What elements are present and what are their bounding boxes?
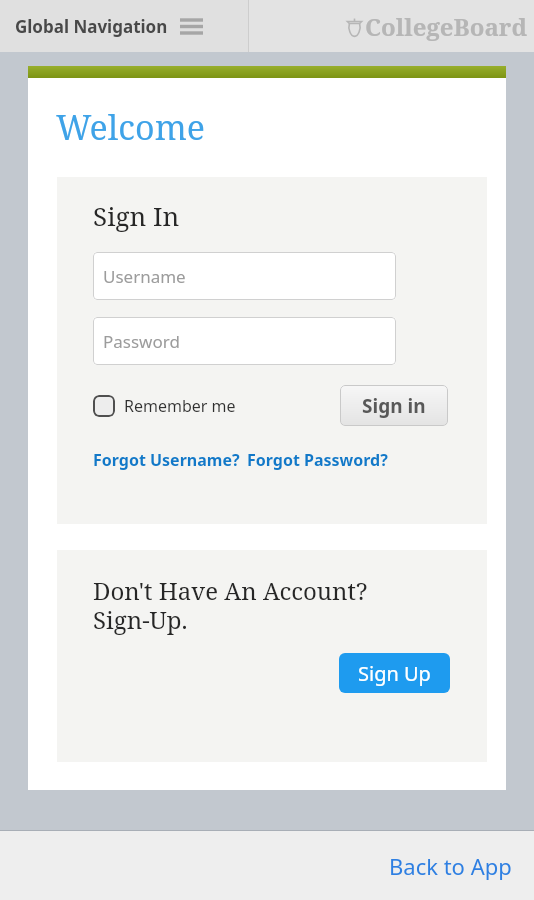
staticText: CollegeBoard (365, 10, 527, 43)
staticText: Remember me (124, 395, 236, 417)
staticText: Password (103, 330, 180, 353)
button[interactable]: Sign Up (339, 653, 450, 693)
button[interactable]: Sign in (340, 385, 448, 426)
staticText: Username (103, 265, 186, 288)
button[interactable]: Username (93, 252, 396, 300)
other: Open navigation menu (179, 18, 204, 35)
button[interactable]: Forgot Password? (247, 449, 388, 471)
button[interactable]: Back to App (367, 839, 534, 893)
staticText: Don't Have An Account? Sign-Up. (93, 574, 368, 636)
button[interactable]: Password (93, 317, 396, 365)
staticText: Welcome (56, 104, 205, 150)
button[interactable]: CollegeBoard (346, 10, 527, 43)
staticText: Sign in (362, 393, 426, 419)
button[interactable]: Global Navigation (0, 0, 248, 52)
staticText: Sign In (93, 198, 180, 233)
staticText: Sign Up (358, 660, 431, 687)
button[interactable]: Remember me (93, 395, 236, 417)
staticText: Global Navigation (15, 15, 168, 38)
staticText: Back to App (389, 851, 512, 881)
button[interactable]: Forgot Username? (93, 449, 240, 471)
